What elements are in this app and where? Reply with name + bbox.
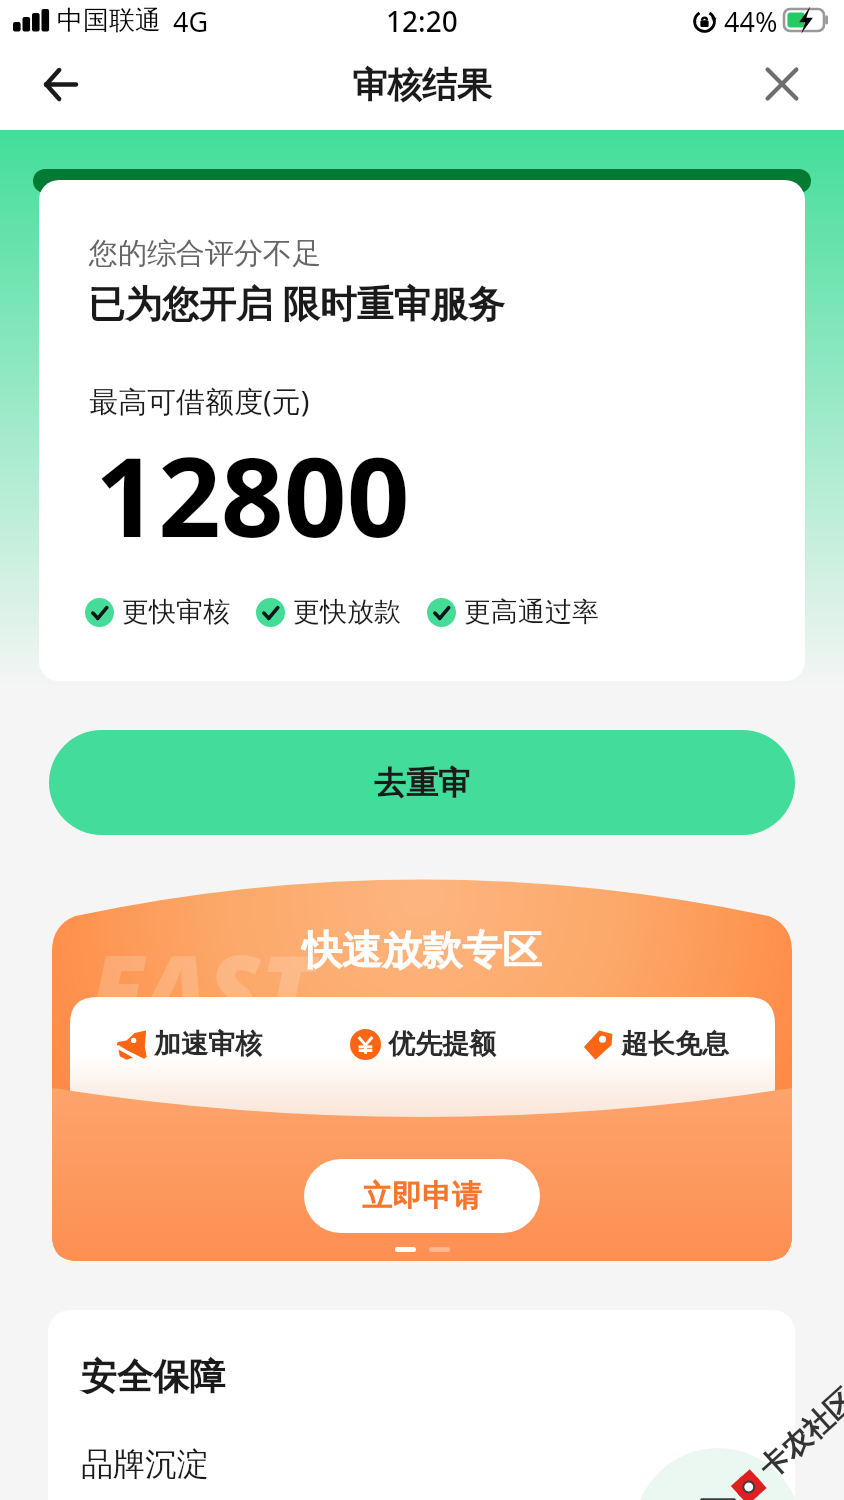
staticText: 品牌沉淀 (81, 1444, 209, 1484)
staticText: 已为您开启 限时重审服务 (88, 277, 505, 328)
staticText: 4G (173, 3, 209, 40)
staticText: 更快放款 (293, 595, 401, 629)
staticText: 12800 (95, 419, 410, 569)
staticText: 超长免息 (621, 1027, 729, 1061)
button[interactable]: 立即申请 (304, 1159, 540, 1233)
staticText: 卡农社区 (752, 1381, 844, 1486)
staticText: 审核结果 (352, 63, 492, 107)
button[interactable]: 去重审 (49, 730, 795, 835)
staticText: 优先提额 (388, 1027, 496, 1061)
staticText: 立即申请 (362, 1177, 482, 1215)
staticText: 更高通过率 (464, 595, 599, 629)
staticText: 12:20 (386, 2, 458, 40)
staticText: 更快审核 (122, 595, 230, 629)
staticText: 44% (724, 3, 778, 40)
staticText: 中国联通 (57, 4, 161, 37)
staticText: 最高可借额度(元) (89, 381, 310, 421)
button[interactable]: Back (28, 52, 92, 116)
staticText: 您的综合评分不足 (89, 235, 321, 272)
staticText: 快速放款专区 (52, 925, 792, 975)
staticText: FAST (90, 922, 314, 1053)
button[interactable]: Close (750, 52, 814, 116)
staticText: 加速审核 (154, 1027, 262, 1061)
staticText: 安全保障 (81, 1354, 225, 1399)
staticText: 去重审 (374, 763, 470, 803)
